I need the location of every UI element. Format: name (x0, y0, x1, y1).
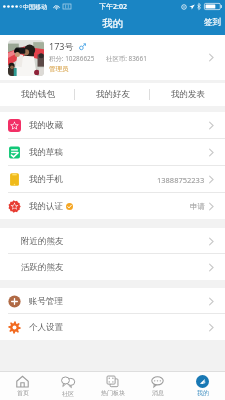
button[interactable]: 个人设置 (0, 314, 225, 340)
staticText: 首页 (17, 389, 29, 397)
staticText: 中国移动 (23, 3, 47, 11)
button[interactable]: 活跃的熊友 (0, 254, 225, 280)
button[interactable]: 我的收藏 (0, 112, 225, 139)
button[interactable]: 我的手机 (0, 166, 225, 193)
staticText: 我的手机 (29, 174, 63, 185)
staticText: 账号管理 (29, 296, 63, 307)
button[interactable]: Messages (135, 372, 180, 400)
staticText: 社区 (62, 390, 74, 398)
button[interactable]: Home (0, 372, 45, 400)
staticText: 我的认证 (29, 201, 63, 212)
staticText: 下午2:02 (99, 2, 127, 12)
staticText: 我的收藏 (29, 120, 63, 131)
staticText: 个人设置 (29, 322, 63, 333)
staticText: 附近的熊友 (21, 236, 64, 247)
button[interactable]: 我的草稿 (0, 139, 225, 166)
button[interactable]: 我的好友 (75, 83, 150, 106)
staticText: 管理员 (49, 65, 69, 73)
staticText: 消息 (152, 389, 164, 397)
button[interactable]: 173号 (0, 35, 225, 80)
button[interactable]: 我的发表 (150, 83, 225, 106)
staticText: 13888752233 (157, 175, 205, 185)
staticText: 我的好友 (96, 89, 130, 100)
staticText: 我的 (102, 17, 123, 30)
staticText: 173号 (49, 40, 74, 52)
staticText: 我的钱包 (21, 89, 55, 100)
button[interactable]: Profile (180, 372, 225, 400)
staticText: 社区币: 83661 (106, 54, 147, 63)
button[interactable]: Community (45, 372, 90, 400)
button[interactable]: 签到 (198, 15, 225, 30)
staticText: 积分: 10286625 (49, 54, 95, 63)
button[interactable]: 我的认证 (0, 193, 225, 219)
staticText: 我的 (197, 389, 209, 397)
button[interactable]: 我的钱包 (0, 83, 75, 106)
button[interactable]: 附近的熊友 (0, 228, 225, 254)
staticText: 我的发表 (171, 89, 205, 100)
staticText: 签到 (204, 17, 221, 28)
staticText: 热门板块 (101, 389, 125, 397)
staticText: 我的草稿 (29, 147, 63, 158)
button[interactable]: 账号管理 (0, 288, 225, 314)
staticText: 申请 (190, 202, 205, 211)
staticText: 活跃的熊友 (21, 262, 64, 273)
button[interactable]: Hot boards (90, 372, 135, 400)
